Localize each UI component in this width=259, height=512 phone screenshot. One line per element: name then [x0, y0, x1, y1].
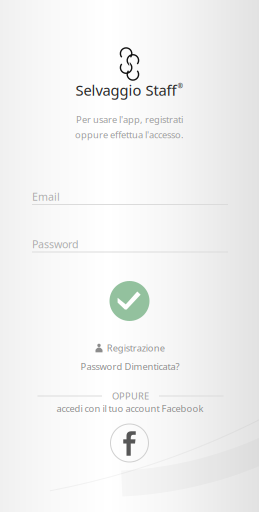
staticText: OPPURE — [112, 390, 149, 402]
staticText: Password Dimenticata? — [80, 360, 179, 373]
staticText: Selvaggio Staff — [75, 80, 176, 100]
staticText: Registrazione — [107, 342, 165, 354]
staticText: Per usare l'app, registrati — [76, 113, 183, 125]
button[interactable]: Password Dimenticata? — [74, 357, 185, 376]
button[interactable]: Accedi — [109, 281, 149, 321]
button[interactable]: Accedi con Facebook — [109, 423, 149, 463]
staticText: oppure effettua l'accesso. — [75, 128, 184, 141]
staticText: ® — [177, 82, 183, 90]
button[interactable]: Registrazione — [89, 339, 171, 357]
staticText: Email — [32, 189, 60, 204]
staticText: Password — [32, 237, 79, 251]
staticText: accedi con il tuo account Facebook — [56, 402, 203, 415]
